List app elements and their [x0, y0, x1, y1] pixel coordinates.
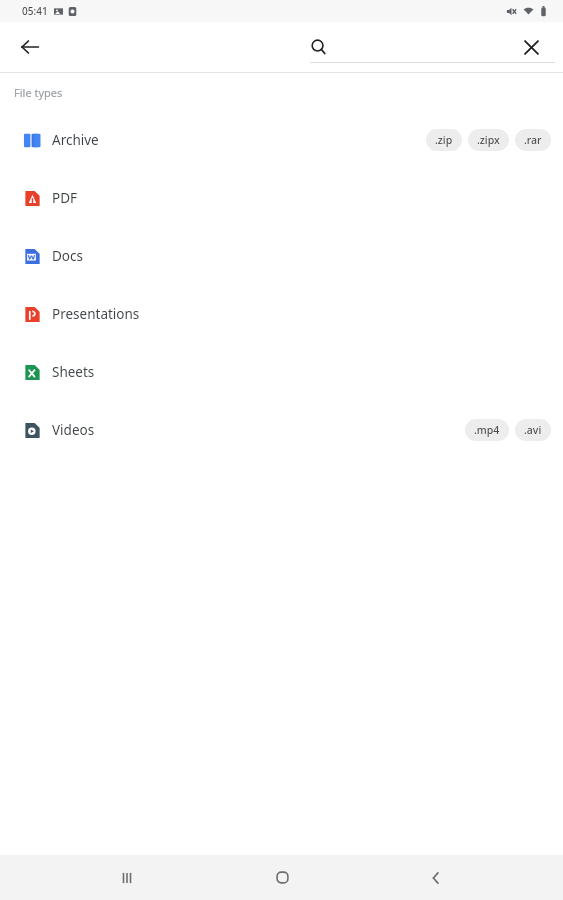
staticText: .zip — [435, 133, 453, 147]
button[interactable]: Docs — [0, 227, 563, 285]
button[interactable]: Back — [408, 855, 464, 900]
button[interactable]: Presentations — [0, 285, 563, 343]
button[interactable]: .rar — [515, 129, 551, 151]
staticText: Sheets — [52, 363, 95, 381]
button[interactable]: .mp4 — [465, 419, 509, 441]
staticText: Presentations — [52, 305, 140, 323]
button[interactable] — [310, 27, 555, 67]
button[interactable]: .zipx — [468, 129, 509, 151]
button[interactable]: PDF — [0, 169, 563, 227]
button[interactable]: Home — [254, 855, 310, 900]
staticText: File types — [14, 85, 63, 100]
button[interactable]: Videos — [0, 401, 563, 459]
staticText: Videos — [52, 421, 95, 439]
staticText: .zipx — [477, 133, 500, 147]
button[interactable]: Recents — [99, 855, 155, 900]
button[interactable]: Clear search — [513, 29, 549, 65]
staticText: 05:41 — [22, 4, 48, 18]
staticText: .rar — [524, 133, 542, 147]
staticText: Archive — [52, 131, 99, 149]
button[interactable]: Sheets — [0, 343, 563, 401]
staticText: .avi — [524, 423, 542, 437]
staticText: PDF — [52, 189, 78, 207]
staticText: .mp4 — [474, 423, 500, 437]
button[interactable]: Archive — [0, 111, 563, 169]
button[interactable]: .avi — [515, 419, 551, 441]
staticText: Docs — [52, 247, 83, 265]
button[interactable]: Back — [10, 27, 50, 67]
button[interactable]: .zip — [426, 129, 462, 151]
